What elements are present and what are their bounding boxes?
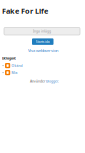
staticText: Delägare: [2, 56, 16, 60]
staticText: Okänd: [12, 63, 23, 68]
staticText: Fake For Life: [2, 6, 48, 16]
staticText: Inga inlägg: [33, 29, 51, 33]
staticText: Blogger.: [46, 79, 59, 83]
staticText: Startsida: [36, 39, 50, 44]
staticText: Använder: [30, 79, 45, 83]
staticText: Mia: [12, 70, 18, 75]
button[interactable]: Startsida: [32, 38, 53, 45]
button[interactable]: Visa webbversion: [28, 48, 58, 53]
staticText: Visa webbversion: [28, 48, 58, 53]
